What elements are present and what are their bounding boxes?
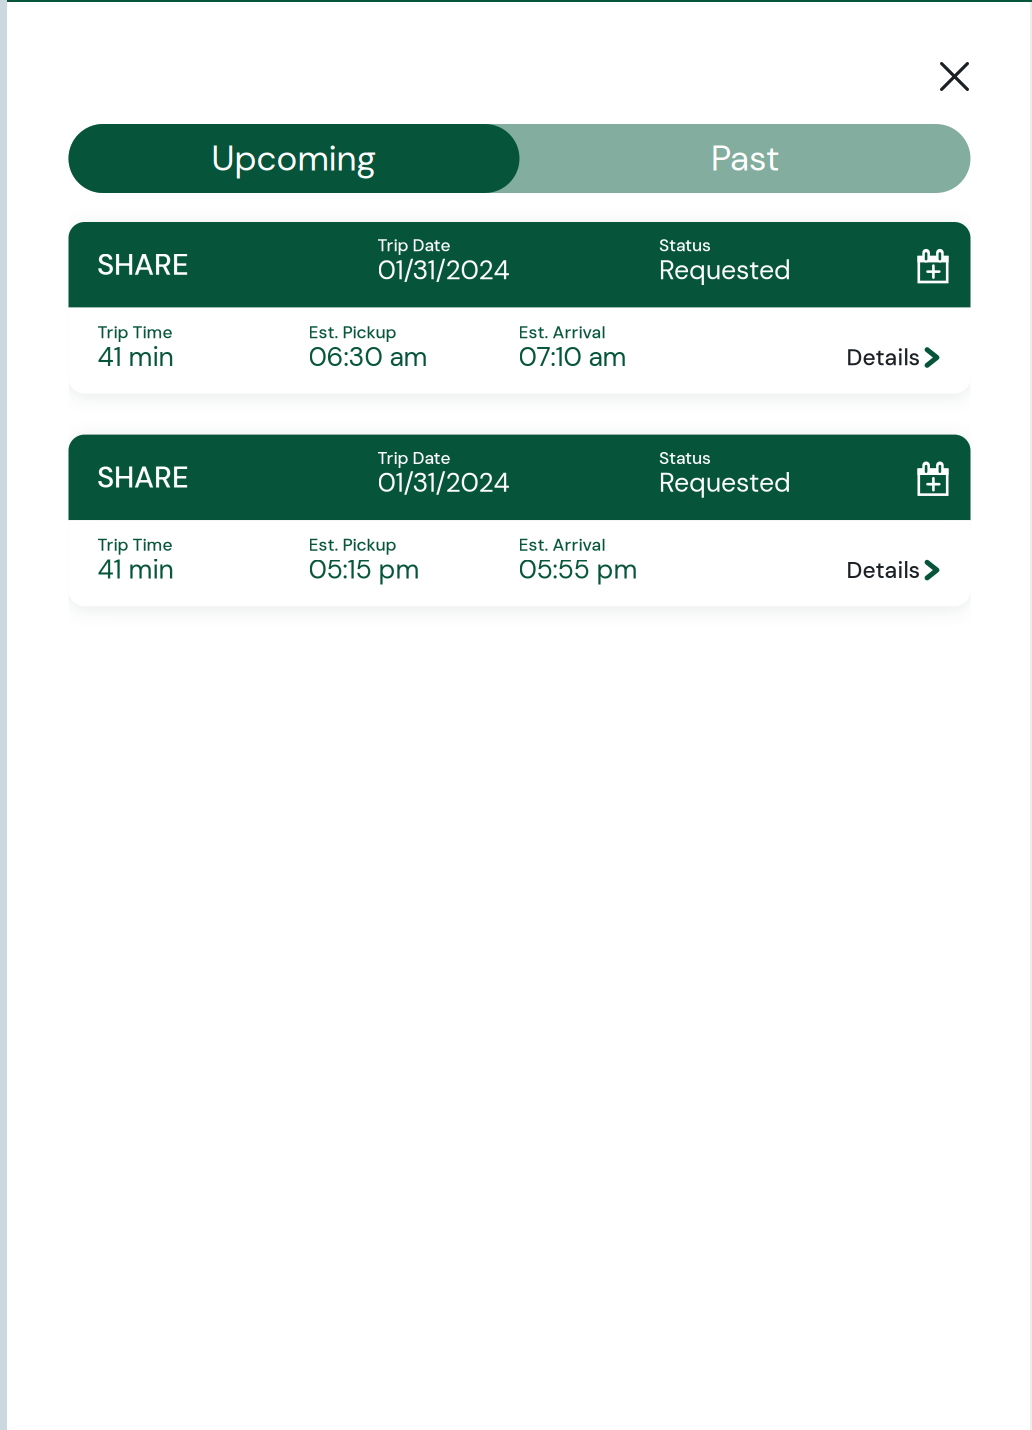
staticText: 07:10 am xyxy=(518,339,626,374)
staticText: Est. Arrival xyxy=(518,534,605,556)
staticText: SHARE xyxy=(97,458,189,496)
staticText: Past xyxy=(711,135,779,181)
staticText: 01/31/2024 xyxy=(377,253,509,287)
staticText: Est. Arrival xyxy=(518,321,605,344)
staticText: 41 min xyxy=(97,339,173,374)
staticText: SHARE xyxy=(97,246,189,284)
staticText: Details xyxy=(846,555,920,585)
staticText: 05:15 pm xyxy=(308,552,419,587)
staticText: 41 min xyxy=(97,552,173,587)
button[interactable]: Add to calendar xyxy=(917,460,948,494)
button[interactable]: Add to calendar xyxy=(917,248,948,282)
staticText: Details xyxy=(846,343,920,372)
staticText: 01/31/2024 xyxy=(377,465,509,500)
button[interactable]: Close xyxy=(931,53,978,100)
staticText: Requested xyxy=(659,253,791,287)
staticText: Status xyxy=(659,234,711,257)
staticText: Trip Time xyxy=(97,534,172,556)
button[interactable]: Upcoming xyxy=(68,124,519,193)
staticText: Trip Date xyxy=(377,234,450,257)
staticText: 06:30 am xyxy=(308,339,427,374)
staticText: Est. Pickup xyxy=(308,534,396,556)
button[interactable]: Details xyxy=(846,336,939,365)
staticText: Status xyxy=(659,447,711,469)
button[interactable]: Past xyxy=(519,124,970,193)
staticText: Requested xyxy=(659,465,791,500)
staticText: 05:55 pm xyxy=(518,552,637,587)
staticText: Est. Pickup xyxy=(308,321,396,344)
staticText: Trip Date xyxy=(377,447,450,469)
staticText: Upcoming xyxy=(211,135,376,181)
staticText: Trip Time xyxy=(97,321,172,344)
button[interactable]: Details xyxy=(846,548,939,578)
